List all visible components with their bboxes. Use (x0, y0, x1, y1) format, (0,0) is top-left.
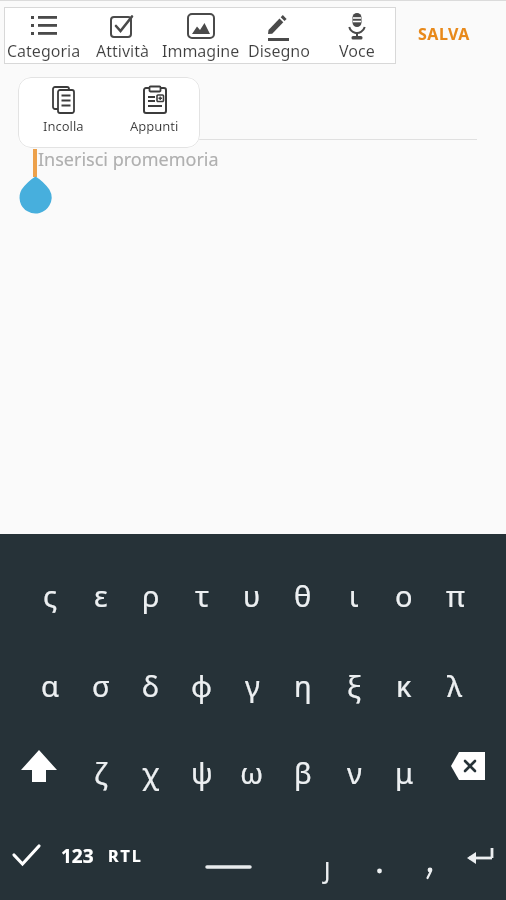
staticText: SALVA (418, 23, 470, 45)
button[interactable]: Immagine (162, 12, 240, 62)
button[interactable]: J (297, 847, 357, 891)
button[interactable] (456, 836, 502, 878)
staticText: γ (245, 666, 260, 705)
staticText: β (294, 753, 312, 792)
staticText: ς (43, 576, 58, 615)
button[interactable] (410, 850, 450, 890)
button[interactable]: π (425, 573, 485, 617)
staticText: ξ (347, 666, 362, 705)
button[interactable]: ε (71, 573, 131, 617)
staticText: τ (195, 576, 210, 615)
staticText: RTL (108, 845, 143, 867)
button[interactable] (180, 835, 280, 879)
button[interactable]: RTL (95, 834, 155, 878)
staticText: Categoria (7, 40, 81, 62)
button[interactable]: Voce (318, 12, 396, 62)
button[interactable]: ο (374, 573, 434, 617)
button[interactable]: θ (273, 573, 333, 617)
staticText: ψ (191, 753, 213, 792)
staticText: φ (191, 666, 213, 705)
staticText: Appunti (130, 117, 179, 135)
button[interactable]: Appunti (109, 77, 200, 148)
button[interactable]: δ (121, 663, 181, 707)
staticText: ζ (94, 753, 108, 792)
staticText: Disegno (248, 40, 310, 62)
button[interactable] (443, 744, 493, 788)
button[interactable]: ν (324, 750, 384, 794)
button[interactable]: β (273, 750, 333, 794)
staticText: μ (395, 753, 414, 792)
staticText: λ (447, 666, 463, 705)
staticText: ο (395, 576, 413, 615)
button[interactable]: φ (172, 663, 232, 707)
button[interactable]: λ (425, 663, 485, 707)
button[interactable] (360, 850, 400, 890)
staticText: Inserisci promemoria (38, 147, 219, 172)
button[interactable]: ψ (172, 750, 232, 794)
button[interactable]: η (273, 663, 333, 707)
button[interactable]: Attività (83, 12, 162, 62)
button[interactable]: 123 (47, 834, 107, 878)
button[interactable]: χ (121, 750, 181, 794)
button[interactable] (6, 835, 50, 877)
button[interactable]: γ (222, 663, 282, 707)
button[interactable]: ι (324, 573, 384, 617)
button[interactable]: Incolla (18, 77, 109, 148)
staticText: Incolla (43, 117, 84, 135)
button[interactable]: Disegno (240, 12, 318, 62)
staticText: ν (347, 753, 362, 792)
staticText: Immagine (162, 40, 240, 62)
staticText: 123 (61, 843, 94, 869)
staticText: π (446, 576, 465, 615)
staticText: Attività (96, 40, 149, 62)
staticText: ω (240, 753, 264, 792)
staticText: σ (92, 666, 110, 705)
button[interactable]: ξ (324, 663, 384, 707)
staticText: χ (142, 753, 160, 792)
button[interactable]: κ (374, 663, 434, 707)
button[interactable]: σ (71, 663, 131, 707)
button[interactable]: μ (374, 750, 434, 794)
staticText: δ (142, 666, 160, 705)
button[interactable]: ζ (71, 750, 131, 794)
button[interactable]: ς (20, 573, 80, 617)
button[interactable]: α (20, 663, 80, 707)
staticText: J (324, 854, 331, 885)
button[interactable]: ρ (121, 573, 181, 617)
staticText: Voce (339, 40, 375, 62)
button[interactable]: Categoria (4, 12, 83, 62)
staticText: υ (243, 576, 261, 615)
button[interactable]: SALVA (406, 16, 482, 52)
staticText: ρ (142, 576, 160, 615)
staticText: ε (94, 576, 108, 615)
button[interactable] (14, 744, 64, 788)
staticText: θ (294, 576, 312, 615)
staticText: α (41, 666, 60, 705)
staticText: ι (349, 576, 359, 615)
button[interactable]: τ (172, 573, 232, 617)
button[interactable]: ω (222, 750, 282, 794)
button[interactable]: υ (222, 573, 282, 617)
staticText: κ (396, 666, 412, 705)
staticText: η (294, 666, 312, 705)
